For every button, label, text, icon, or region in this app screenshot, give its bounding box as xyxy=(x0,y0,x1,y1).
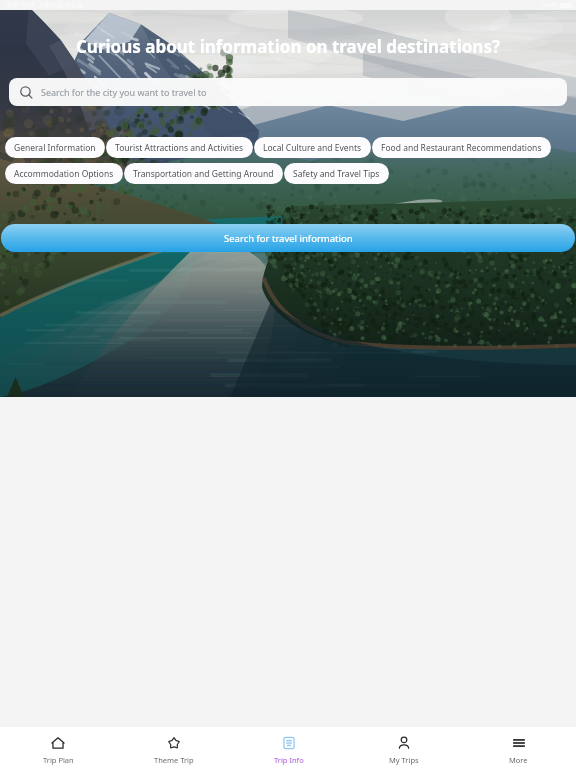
staticText: Trip Info xyxy=(274,755,304,765)
button[interactable]: Food and Restaurant Recommendations xyxy=(372,137,551,158)
button[interactable]: Local Culture and Events xyxy=(254,137,371,158)
button[interactable]: More xyxy=(461,730,576,765)
staticText: My Trips xyxy=(389,755,419,765)
button[interactable]: Safety and Travel Tips xyxy=(284,163,389,184)
button[interactable]: Trip Info xyxy=(231,730,346,765)
button[interactable]: Tourist Attractions and Activities xyxy=(106,137,253,158)
staticText: Search for travel information xyxy=(224,232,353,245)
button[interactable]: Transportation and Getting Around xyxy=(124,163,283,184)
staticText: Trip Plan xyxy=(43,755,74,765)
staticText: Local Culture and Events xyxy=(263,142,362,154)
button[interactable]: Theme Trip xyxy=(116,730,231,765)
staticText: Search for the city you want to travel t… xyxy=(41,86,207,98)
button[interactable]: My Trips xyxy=(346,730,461,765)
button[interactable]: Search for the city you want to travel t… xyxy=(9,78,567,106)
staticText: Safety and Travel Tips xyxy=(293,168,380,180)
staticText: More xyxy=(509,755,528,765)
staticText: General Information xyxy=(14,142,96,154)
staticText: Accommodation Options xyxy=(14,168,114,180)
button[interactable]: Trip Plan xyxy=(0,730,116,765)
staticText: Food and Restaurant Recommendations xyxy=(381,142,542,154)
staticText: Tourist Attractions and Activities xyxy=(115,142,244,154)
staticText: Transportation and Getting Around xyxy=(133,168,274,180)
button[interactable]: General Information xyxy=(5,137,105,158)
staticText: Theme Trip xyxy=(154,755,194,765)
staticText: Curious about information on travel dest… xyxy=(0,35,576,58)
button[interactable]: Accommodation Options xyxy=(5,163,123,184)
button[interactable]: Search for travel information xyxy=(1,224,575,252)
